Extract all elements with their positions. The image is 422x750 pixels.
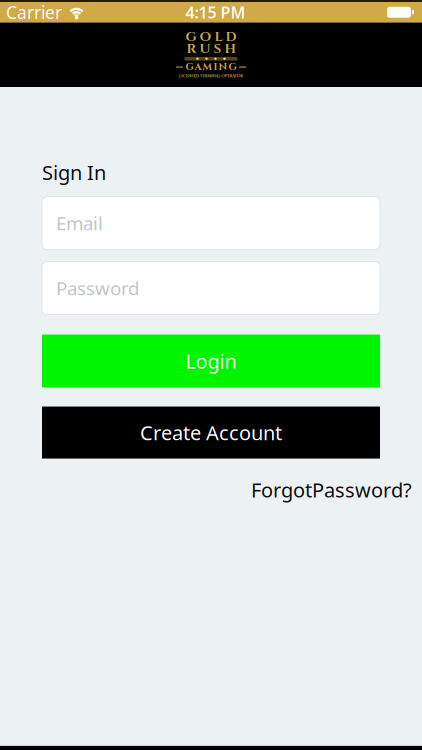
staticText: Login bbox=[185, 348, 236, 374]
staticText: G A M I N G bbox=[185, 60, 236, 74]
button[interactable]: Create Account bbox=[42, 407, 380, 459]
staticText: Password bbox=[56, 276, 139, 300]
staticText: Sign In bbox=[42, 159, 106, 186]
button[interactable]: ForgotPassword? bbox=[251, 477, 412, 503]
staticText: Email bbox=[56, 211, 103, 235]
staticText: Carrier bbox=[6, 1, 62, 24]
staticText: Create Account bbox=[140, 419, 282, 446]
staticText: G O L D bbox=[185, 28, 236, 46]
staticText: ForgotPassword? bbox=[251, 477, 412, 503]
staticText: 4:15 PM bbox=[185, 2, 245, 23]
staticText: LICENSED TERMINAL OPERATOR bbox=[140, 70, 282, 82]
staticText: R U S H bbox=[186, 40, 235, 58]
button[interactable]: Login bbox=[42, 335, 380, 388]
